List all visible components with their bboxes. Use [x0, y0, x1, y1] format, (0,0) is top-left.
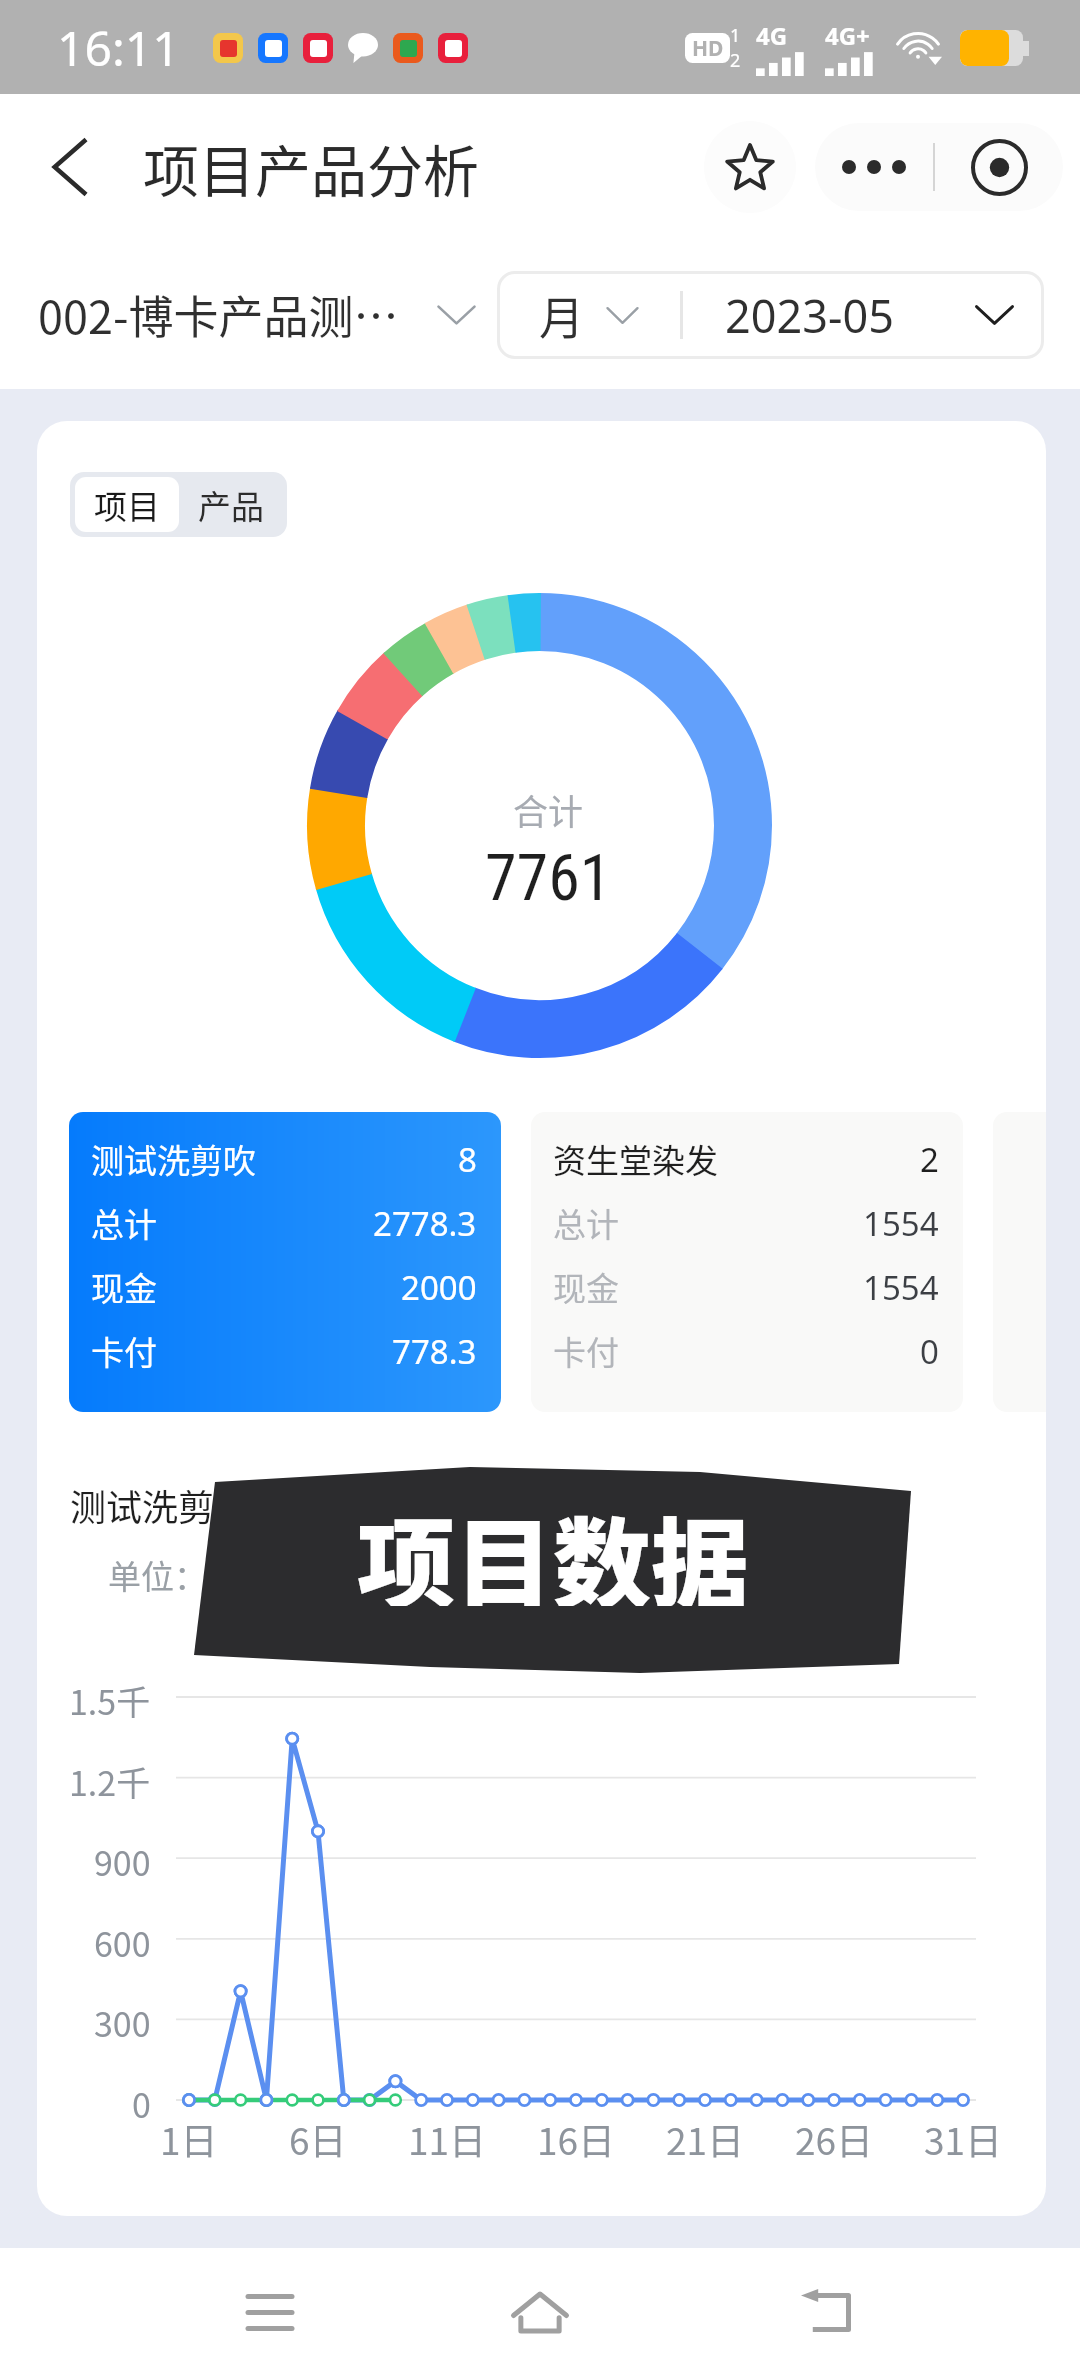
staticText: 1日 — [160, 2112, 218, 2166]
button[interactable]: More options — [815, 123, 933, 211]
staticText: 2 — [730, 48, 741, 73]
staticText: 合计 — [513, 784, 584, 835]
button[interactable]: 月 — [497, 271, 680, 359]
staticText: 8 — [458, 1137, 477, 1182]
staticText: 月 — [539, 283, 585, 348]
staticText: 卡付 — [553, 1327, 619, 1375]
staticText: 4G+ — [825, 19, 870, 52]
staticText: 2778.3 — [373, 1201, 477, 1246]
button[interactable]: Back — [36, 122, 102, 212]
staticText: 测试洗剪吹 — [70, 1479, 251, 1531]
staticText: 21日 — [666, 2112, 745, 2166]
staticText: 1.2千 — [69, 1757, 151, 1799]
button[interactable]: Home — [490, 2270, 590, 2354]
button[interactable]: 002-博卡产品测… — [38, 282, 476, 347]
staticText: 总计 — [553, 1199, 619, 1247]
staticText: 项目数据 — [357, 1486, 750, 1606]
staticText: 卡付 — [91, 1327, 157, 1375]
button[interactable]: Close — [935, 123, 1063, 211]
staticText: 1 — [730, 23, 741, 48]
button[interactable]: Favorite — [704, 121, 796, 213]
staticText: 0 — [920, 1329, 939, 1374]
button[interactable]: 资生堂染发 — [531, 1112, 963, 1412]
button[interactable]: 2023-05 — [683, 271, 1044, 359]
staticText: 现金 — [553, 1263, 619, 1311]
staticText: HD — [692, 34, 724, 63]
staticText: 600 — [94, 1918, 151, 1960]
button[interactable]: Recent apps — [220, 2270, 320, 2354]
staticText: 31日 — [924, 2112, 1003, 2166]
staticText: 26日 — [795, 2112, 874, 2166]
staticText: 7761 — [485, 841, 612, 916]
button[interactable]: 测试洗剪吹 — [69, 1112, 501, 1412]
staticText: 1.5千 — [69, 1676, 151, 1718]
staticText: 现金 — [91, 1263, 157, 1311]
staticText: 900 — [94, 1837, 151, 1879]
staticText: 项目产品分析 — [143, 127, 479, 208]
staticText: 0 — [132, 2079, 151, 2121]
staticText: 2 — [920, 1137, 939, 1182]
staticText: 778.3 — [392, 1329, 477, 1374]
staticText: 资生堂染发 — [553, 1135, 718, 1183]
staticText: 6日 — [289, 2112, 347, 2166]
staticText: 项目 — [94, 481, 160, 529]
staticText: 总计 — [91, 1199, 157, 1247]
staticText: 4G — [756, 19, 788, 52]
staticText: 单位： — [108, 1551, 207, 1599]
staticText: 测试洗剪吹 — [91, 1135, 256, 1183]
staticText: 2000 — [401, 1265, 477, 1310]
button[interactable]: 产品 — [179, 477, 282, 532]
staticText: 16日 — [537, 2112, 616, 2166]
staticText: 002-博卡产品测… — [38, 282, 399, 347]
staticText: 1554 — [863, 1265, 939, 1310]
staticText: 16:11 — [57, 15, 180, 80]
staticText: 300 — [94, 1998, 151, 2040]
button[interactable]: Back — [776, 2270, 876, 2354]
button[interactable]: 项目 — [75, 477, 179, 532]
staticText: 11日 — [408, 2112, 487, 2166]
staticText: 1554 — [863, 1201, 939, 1246]
staticText: 产品 — [198, 481, 264, 529]
staticText: 2023-05 — [725, 285, 894, 346]
